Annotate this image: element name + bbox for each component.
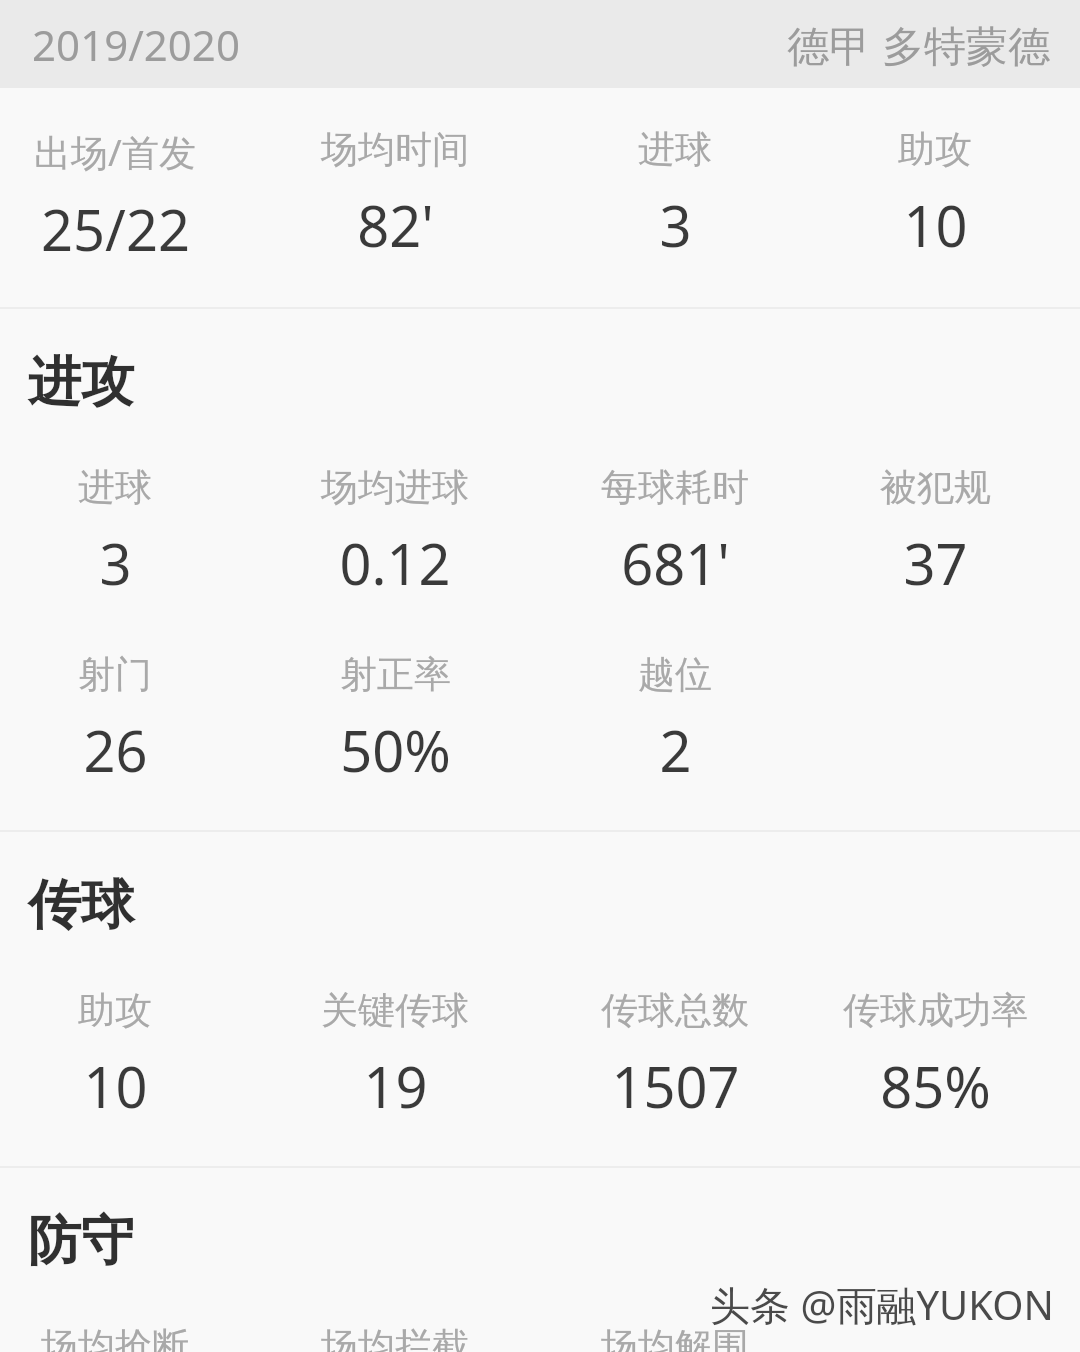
staticText: 10 <box>903 187 968 263</box>
staticText: 关键传球 <box>321 987 469 1034</box>
staticText: 被犯规 <box>880 464 991 511</box>
staticText: 681' <box>621 525 730 601</box>
staticText: 82' <box>357 187 434 263</box>
staticText: 助攻 <box>898 126 972 173</box>
button[interactable]: 场均拦截 <box>255 1323 535 1352</box>
staticText: 场均进球 <box>321 464 469 511</box>
button[interactable]: 传球成功率 <box>815 987 1055 1124</box>
staticText: 37 <box>903 525 968 601</box>
staticText: 1507 <box>611 1048 740 1124</box>
staticText: 场均时间 <box>321 126 469 173</box>
staticText: 助攻 <box>78 987 152 1034</box>
staticText: 50% <box>340 712 451 788</box>
staticText: 2 <box>659 712 692 788</box>
staticText: 进球 <box>78 464 152 511</box>
staticText: 德甲 多特蒙德 <box>787 16 1050 73</box>
button[interactable]: 射正率 <box>255 651 535 788</box>
button[interactable]: 出场/首发 <box>0 126 255 267</box>
staticText: 85% <box>880 1048 991 1124</box>
button[interactable]: 助攻 <box>815 126 1055 263</box>
button[interactable]: 被犯规 <box>815 464 1055 601</box>
staticText: 3 <box>99 525 132 601</box>
button[interactable]: 2019/2020 <box>0 0 1080 88</box>
button[interactable]: 进球 <box>535 126 815 263</box>
staticText: 头条 @雨融YUKON <box>710 1277 1054 1332</box>
button[interactable]: 关键传球 <box>255 987 535 1124</box>
staticText: 0.12 <box>339 525 451 601</box>
staticText: 场均抢断 <box>41 1323 189 1352</box>
button[interactable]: 防守 <box>0 1208 1080 1275</box>
staticText: 进球 <box>638 126 712 173</box>
staticText: 3 <box>659 187 692 263</box>
staticText: 场均解围 <box>601 1323 749 1352</box>
button[interactable]: 射门 <box>0 651 255 788</box>
button[interactable]: 助攻 <box>0 987 255 1124</box>
staticText: 传球成功率 <box>843 987 1028 1034</box>
button[interactable]: 场均抢断 <box>0 1323 255 1352</box>
button[interactable]: 传球总数 <box>535 987 815 1124</box>
staticText: 10 <box>83 1048 148 1124</box>
staticText: 防守 <box>28 1208 134 1275</box>
button[interactable]: 进攻 <box>0 349 1080 416</box>
staticText: 每球耗时 <box>601 464 749 511</box>
staticText: 传球 <box>28 872 134 939</box>
staticText: 场均拦截 <box>321 1323 469 1352</box>
staticText: 射正率 <box>340 651 451 698</box>
staticText: 出场/首发 <box>34 126 196 177</box>
staticText: 26 <box>83 712 148 788</box>
staticText: 25/22 <box>41 191 190 267</box>
staticText: 2019/2020 <box>32 16 240 73</box>
button[interactable]: 场均时间 <box>255 126 535 263</box>
staticText: 19 <box>363 1048 428 1124</box>
staticText: 射门 <box>78 651 152 698</box>
button[interactable]: 场均进球 <box>255 464 535 601</box>
button[interactable]: 场均解围 <box>535 1323 815 1352</box>
button[interactable]: 进球 <box>0 464 255 601</box>
staticText: 传球总数 <box>601 987 749 1034</box>
button[interactable]: 越位 <box>535 651 815 788</box>
staticText: 进攻 <box>28 349 134 416</box>
button[interactable]: 每球耗时 <box>535 464 815 601</box>
staticText: 越位 <box>638 651 712 698</box>
button[interactable]: 传球 <box>0 872 1080 939</box>
